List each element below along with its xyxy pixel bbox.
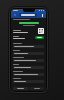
button[interactable] — [13, 43, 44, 50]
button[interactable] — [13, 78, 44, 85]
button[interactable] — [13, 87, 28, 90]
button[interactable]: Back — [13, 13, 17, 17]
button[interactable]: More options — [40, 13, 44, 17]
button[interactable] — [13, 50, 44, 57]
button[interactable] — [13, 71, 44, 78]
button[interactable] — [29, 87, 44, 90]
button[interactable]: QR code — [38, 28, 44, 34]
button[interactable] — [35, 36, 44, 39]
button[interactable] — [13, 57, 44, 64]
button[interactable]: QR code — [13, 28, 44, 34]
button[interactable] — [13, 64, 44, 71]
